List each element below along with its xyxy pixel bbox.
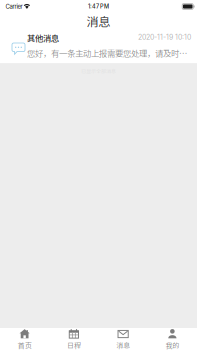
staticText: 2020-11-19 10:10: [138, 33, 191, 41]
staticText: Carrier: [5, 3, 22, 10]
staticText: 您好，有一条主动上报需要您处理，请及时进…: [27, 47, 191, 59]
button[interactable]: 日程: [49, 326, 98, 351]
staticText: 首页: [18, 340, 32, 350]
button[interactable]: 首页: [0, 326, 49, 351]
staticText: 其他消息: [27, 32, 59, 44]
button[interactable]: 其他消息: [0, 29, 197, 63]
staticText: 日程: [67, 340, 81, 350]
staticText: 消息: [116, 340, 130, 350]
staticText: 我的: [165, 340, 179, 350]
staticText: 消息: [86, 12, 110, 30]
button[interactable]: 消息: [98, 326, 148, 351]
button[interactable]: 我的: [148, 326, 197, 351]
staticText: 1:47 PM: [88, 3, 109, 10]
